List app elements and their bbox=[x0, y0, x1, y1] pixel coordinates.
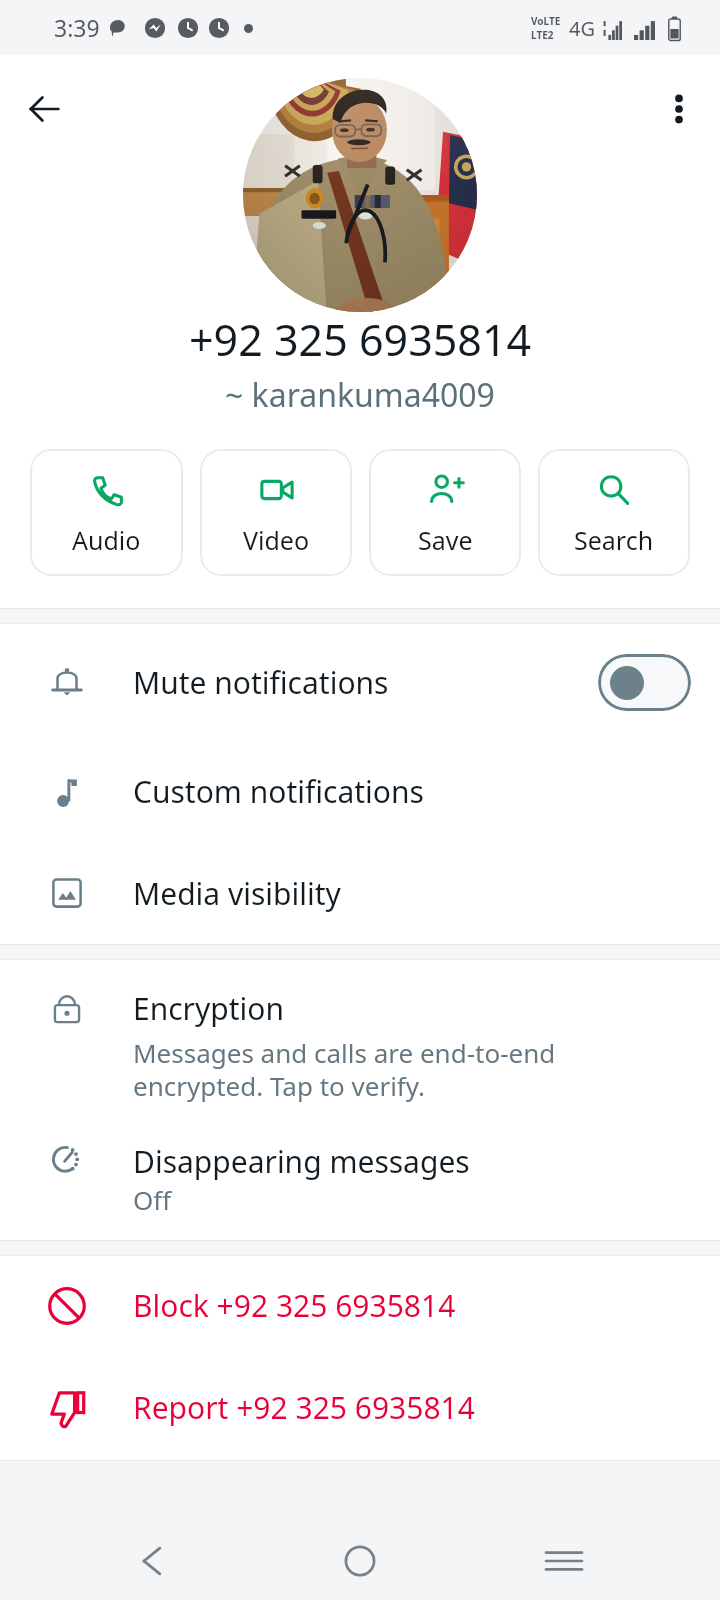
staticText: VoLTE bbox=[531, 14, 561, 28]
button[interactable]: Report +92 325 6935814 bbox=[0, 1355, 720, 1460]
staticText: Block +92 325 6935814 bbox=[133, 1285, 456, 1326]
staticText: Report +92 325 6935814 bbox=[133, 1387, 475, 1428]
staticText: ~ karankuma4009 bbox=[225, 373, 495, 417]
button[interactable]: Mute notifications toggle bbox=[598, 654, 691, 711]
staticText: +92 325 6935814 bbox=[189, 310, 532, 369]
button[interactable]: Media visibility bbox=[0, 842, 720, 944]
staticText: Disappearing messages bbox=[133, 1141, 470, 1182]
button[interactable]: Audio bbox=[30, 449, 183, 576]
button[interactable]: More options bbox=[651, 81, 707, 137]
button[interactable]: Encryption bbox=[0, 960, 720, 1124]
button[interactable]: Home bbox=[312, 1513, 408, 1600]
staticText: Search bbox=[574, 523, 654, 557]
button[interactable]: Disappearing messages bbox=[0, 1124, 720, 1240]
button[interactable]: Search bbox=[538, 449, 690, 576]
staticText: Video bbox=[243, 523, 310, 557]
staticText: Media visibility bbox=[133, 873, 720, 914]
staticText: Off bbox=[133, 1182, 172, 1217]
staticText: Save bbox=[418, 523, 473, 557]
staticText: 3:39 bbox=[54, 12, 100, 43]
staticText: Mute notifications bbox=[133, 662, 598, 703]
staticText: LTE2 bbox=[531, 28, 554, 42]
staticText: 4G bbox=[569, 15, 595, 42]
button[interactable]: Block +92 325 6935814 bbox=[0, 1256, 720, 1355]
button[interactable]: Profile photo bbox=[243, 78, 477, 312]
staticText: Encryption bbox=[133, 988, 285, 1029]
button[interactable]: Back bbox=[103, 1513, 199, 1600]
button[interactable]: Video bbox=[200, 449, 352, 576]
button[interactable]: Back bbox=[16, 81, 72, 137]
button[interactable]: Mute notifications bbox=[0, 624, 720, 740]
button[interactable]: Recent apps bbox=[516, 1513, 612, 1600]
staticText: Messages and calls are end-to-end encryp… bbox=[133, 1035, 556, 1104]
button[interactable]: Custom notifications bbox=[0, 740, 720, 842]
staticText: Audio bbox=[72, 523, 141, 557]
staticText: Custom notifications bbox=[133, 771, 720, 812]
button[interactable]: Save bbox=[369, 449, 521, 576]
